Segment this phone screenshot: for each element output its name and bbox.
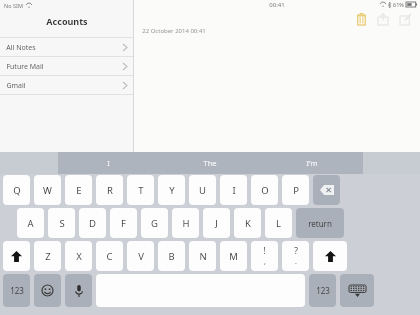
- button[interactable]: Backspace: [313, 175, 340, 205]
- button[interactable]: R: [96, 175, 123, 205]
- staticText: K: [245, 217, 251, 230]
- button[interactable]: H: [172, 208, 199, 238]
- staticText: 22 October 2014 00:41: [142, 27, 206, 35]
- staticText: 123: [316, 285, 330, 296]
- button[interactable]: N: [189, 241, 216, 271]
- staticText: Q: [13, 184, 21, 197]
- staticText: C: [106, 250, 113, 263]
- button[interactable]: Dictation: [65, 274, 92, 307]
- button[interactable]: V: [127, 241, 154, 271]
- staticText: U: [199, 184, 206, 197]
- staticText: O: [261, 184, 269, 197]
- button[interactable]: Emoji: [34, 274, 61, 307]
- button[interactable]: Delete: [350, 9, 372, 29]
- staticText: Y: [169, 184, 175, 197]
- staticText: G: [151, 217, 158, 230]
- button[interactable]: O: [251, 175, 278, 205]
- staticText: I: [107, 158, 110, 168]
- button[interactable]: Gmail: [0, 76, 133, 95]
- button[interactable]: W: [34, 175, 61, 205]
- button[interactable]: L: [265, 208, 292, 238]
- staticText: No SIM: [4, 2, 23, 9]
- button[interactable]: Q: [3, 175, 30, 205]
- staticText: W: [43, 184, 52, 197]
- staticText: E: [76, 184, 82, 197]
- button[interactable]: M: [220, 241, 247, 271]
- staticText: I: [232, 184, 236, 197]
- staticText: 61%: [393, 1, 404, 8]
- staticText: The: [203, 158, 217, 168]
- staticText: Gmail: [6, 81, 26, 91]
- button[interactable]: F: [110, 208, 137, 238]
- staticText: return: [308, 218, 332, 229]
- button[interactable]: U: [189, 175, 216, 205]
- button[interactable]: ?: [282, 241, 309, 271]
- staticText: Z: [45, 250, 51, 263]
- button[interactable]: Z: [34, 241, 61, 271]
- staticText: ?: [294, 245, 298, 257]
- staticText: J: [215, 217, 218, 230]
- button[interactable]: Shift: [313, 241, 347, 271]
- staticText: P: [293, 184, 299, 197]
- button[interactable]: C: [96, 241, 123, 271]
- staticText: S: [59, 217, 65, 230]
- button[interactable]: I: [58, 152, 159, 174]
- staticText: R: [107, 184, 113, 197]
- button[interactable]: Y: [158, 175, 185, 205]
- button[interactable]: S: [48, 208, 75, 238]
- staticText: M: [229, 250, 238, 263]
- staticText: Future Mail: [6, 62, 44, 72]
- button[interactable]: J: [203, 208, 230, 238]
- button[interactable]: !: [251, 241, 278, 271]
- button[interactable]: P: [282, 175, 309, 205]
- staticText: V: [138, 250, 144, 263]
- button[interactable]: G: [141, 208, 168, 238]
- button[interactable]: 123: [309, 274, 336, 307]
- staticText: A: [27, 217, 34, 230]
- staticText: F: [121, 217, 126, 230]
- button[interactable]: B: [158, 241, 185, 271]
- button[interactable]: E: [65, 175, 92, 205]
- staticText: 123: [10, 285, 24, 296]
- button[interactable]: K: [234, 208, 261, 238]
- staticText: Accounts: [46, 15, 88, 27]
- button[interactable]: I: [220, 175, 247, 205]
- button[interactable]: Compose: [394, 9, 416, 29]
- staticText: All Notes: [6, 43, 36, 53]
- button[interactable]: return: [296, 208, 344, 238]
- staticText: H: [182, 217, 190, 230]
- staticText: ,: [264, 257, 266, 267]
- staticText: B: [168, 250, 175, 263]
- button[interactable]: D: [79, 208, 106, 238]
- staticText: 00:41: [269, 1, 285, 9]
- staticText: T: [138, 184, 144, 197]
- button[interactable]: Hide keyboard: [340, 274, 374, 307]
- button[interactable]: All Notes: [0, 38, 133, 57]
- button[interactable]: I'm: [261, 152, 363, 174]
- staticText: !: [263, 245, 266, 257]
- staticText: D: [89, 217, 96, 230]
- button[interactable]: T: [127, 175, 154, 205]
- staticText: L: [276, 217, 281, 230]
- button[interactable]: The: [159, 152, 261, 174]
- button[interactable]: Share: [372, 9, 394, 29]
- button[interactable]: Future Mail: [0, 57, 133, 76]
- staticText: X: [76, 250, 82, 263]
- button[interactable]: 123: [3, 274, 30, 307]
- button[interactable]: Shift: [3, 241, 30, 271]
- button[interactable]: X: [65, 241, 92, 271]
- staticText: .: [295, 257, 297, 267]
- button[interactable]: A: [17, 208, 44, 238]
- staticText: I'm: [306, 158, 318, 168]
- staticText: N: [199, 250, 207, 263]
